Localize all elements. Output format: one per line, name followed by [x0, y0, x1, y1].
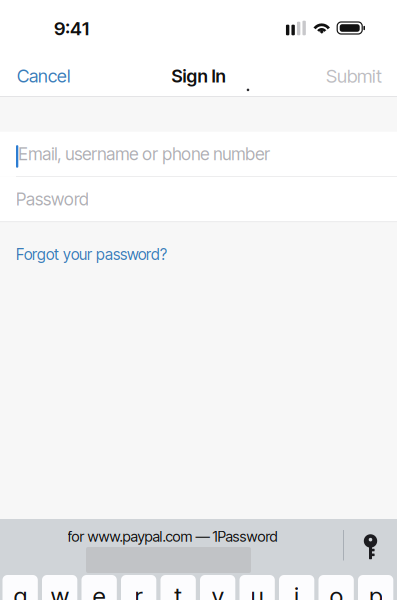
staticText: e: [93, 581, 106, 600]
button[interactable]: o: [318, 575, 354, 600]
button[interactable]: q: [2, 575, 38, 600]
button[interactable]: i: [279, 575, 314, 600]
button[interactable]: e: [81, 575, 117, 600]
button[interactable]: Email, username or phone number: [0, 132, 397, 176]
staticText: y: [212, 581, 224, 600]
staticText: Password: [16, 189, 89, 210]
button[interactable]: Forgot your password?: [0, 222, 177, 275]
button[interactable]: Submit: [314, 49, 397, 96]
staticText: t: [174, 581, 182, 600]
staticText: w: [51, 581, 69, 600]
staticText: i: [294, 581, 299, 600]
staticText: u: [251, 581, 264, 600]
button[interactable]: Passwords: [361, 521, 379, 548]
staticText: p: [369, 581, 382, 600]
button[interactable]: w: [42, 575, 77, 600]
button[interactable]: Password: [0, 177, 397, 221]
staticText: for www.paypal.com — 1Password: [67, 528, 277, 545]
button[interactable]: r: [121, 575, 156, 600]
staticText: 9:41: [54, 17, 89, 40]
staticText: r: [135, 581, 143, 600]
staticText: o: [330, 581, 343, 600]
staticText: Email, username or phone number: [18, 143, 270, 164]
staticText: Submit: [326, 65, 382, 87]
button[interactable]: p: [358, 575, 393, 600]
staticText: Cancel: [17, 65, 70, 87]
staticText: q: [14, 581, 27, 600]
staticText: Forgot your password?: [16, 245, 167, 264]
button[interactable]: u: [239, 575, 275, 600]
button[interactable]: Cancel: [0, 49, 82, 96]
button[interactable]: t: [160, 575, 196, 600]
staticText: Sign In: [171, 65, 225, 87]
button[interactable]: y: [200, 575, 235, 600]
